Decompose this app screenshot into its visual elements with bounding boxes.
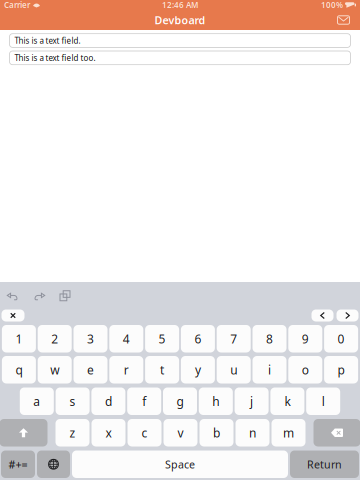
button[interactable]: w <box>38 356 72 383</box>
button[interactable]: u <box>217 356 251 383</box>
button[interactable]: o <box>288 356 322 383</box>
staticText: Devboard <box>154 13 205 27</box>
button[interactable]: Redo <box>26 284 52 308</box>
button[interactable]: h <box>199 387 233 415</box>
button[interactable]: l <box>306 387 340 415</box>
button[interactable]: 0 <box>324 325 358 352</box>
button[interactable]: Space <box>72 450 288 478</box>
button[interactable] <box>336 309 358 321</box>
staticText: Carrier <box>4 0 30 10</box>
button[interactable]: f <box>127 387 161 415</box>
button[interactable]: 5 <box>145 325 179 352</box>
button[interactable]: p <box>324 356 358 383</box>
staticText: s <box>70 393 76 409</box>
staticText: 12:46 AM <box>162 0 198 10</box>
staticText: r <box>124 362 129 378</box>
button[interactable] <box>313 419 360 446</box>
button[interactable]: 3 <box>73 325 107 352</box>
button[interactable]: e <box>73 356 107 383</box>
button[interactable] <box>37 450 70 478</box>
staticText: q <box>15 362 22 378</box>
button[interactable]: Mail <box>332 10 355 30</box>
staticText: y <box>195 362 201 378</box>
staticText: o <box>302 362 309 378</box>
button[interactable]: 8 <box>252 325 286 352</box>
button[interactable]: a <box>20 387 54 415</box>
button[interactable]: x <box>91 419 125 446</box>
staticText: x <box>105 425 111 441</box>
staticText: 8 <box>266 331 273 347</box>
staticText: h <box>212 393 219 409</box>
button[interactable]: t <box>145 356 179 383</box>
staticText: d <box>105 393 112 409</box>
button[interactable]: m <box>271 419 305 446</box>
button[interactable]: r <box>109 356 143 383</box>
staticText: Space <box>165 457 195 471</box>
staticText: Return <box>307 457 342 471</box>
button[interactable]: 7 <box>217 325 251 352</box>
staticText: u <box>230 362 237 378</box>
staticText: g <box>176 393 183 409</box>
staticText: i <box>268 362 271 378</box>
staticText: 3 <box>87 331 94 347</box>
button[interactable]: Undo <box>0 284 26 308</box>
button[interactable]: Paste <box>52 284 78 308</box>
staticText: k <box>284 393 290 409</box>
staticText: 1 <box>15 331 22 347</box>
button[interactable]: v <box>163 419 197 446</box>
button[interactable] <box>1 309 24 321</box>
button[interactable]: z <box>55 419 89 446</box>
button[interactable]: 4 <box>109 325 143 352</box>
staticText: p <box>338 362 345 378</box>
button[interactable]: 1 <box>2 325 36 352</box>
button[interactable]: i <box>252 356 286 383</box>
button[interactable]: y <box>181 356 215 383</box>
button[interactable]: c <box>127 419 161 446</box>
staticText: 5 <box>159 331 166 347</box>
button[interactable]: #+= <box>1 450 35 478</box>
staticText: t <box>160 362 164 378</box>
button[interactable]: s <box>56 387 90 415</box>
button[interactable] <box>0 419 47 446</box>
staticText: #+= <box>8 457 27 471</box>
staticText: This is a text field. <box>14 35 80 46</box>
staticText: z <box>69 425 75 441</box>
staticText: This is a text field too. <box>14 52 95 63</box>
staticText: 0 <box>338 331 345 347</box>
staticText: a <box>33 393 40 409</box>
button[interactable]: q <box>2 356 36 383</box>
staticText: 7 <box>230 331 237 347</box>
button[interactable]: n <box>235 419 269 446</box>
staticText: n <box>249 425 256 441</box>
staticText: 100% <box>321 0 343 10</box>
staticText: j <box>250 393 253 409</box>
button[interactable]: j <box>235 387 269 415</box>
button[interactable]: g <box>163 387 197 415</box>
button[interactable]: 6 <box>181 325 215 352</box>
staticText: l <box>322 393 325 409</box>
button[interactable]: 2 <box>38 325 72 352</box>
staticText: b <box>213 425 220 441</box>
button[interactable]: Return <box>290 450 359 478</box>
staticText: 4 <box>123 331 130 347</box>
button[interactable] <box>311 309 333 321</box>
staticText: c <box>141 425 147 441</box>
staticText: m <box>283 425 294 441</box>
staticText: v <box>177 425 183 441</box>
staticText: 6 <box>194 331 201 347</box>
staticText: w <box>50 362 59 378</box>
staticText: 2 <box>51 331 58 347</box>
staticText: 9 <box>302 331 309 347</box>
staticText: f <box>142 393 146 409</box>
button[interactable]: d <box>91 387 125 415</box>
button[interactable]: 9 <box>288 325 322 352</box>
staticText: e <box>87 362 94 378</box>
button[interactable]: k <box>270 387 304 415</box>
button[interactable]: b <box>199 419 233 446</box>
